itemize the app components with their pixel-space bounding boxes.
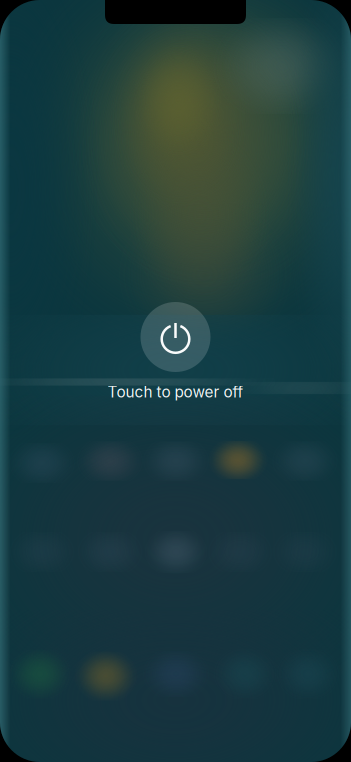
button[interactable]: Power off — [140, 302, 210, 372]
staticText: Touch to power off — [107, 383, 243, 401]
